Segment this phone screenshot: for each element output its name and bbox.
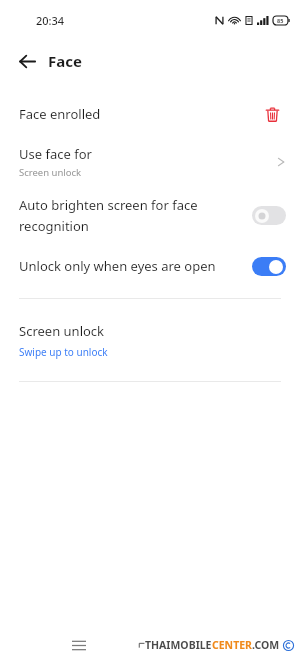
button[interactable]: Screen unlock: [0, 299, 300, 381]
button[interactable]: Menu: [64, 630, 94, 660]
staticText: Auto brighten screen for face: [19, 196, 198, 214]
staticText: Unlock only when eyes are open: [19, 257, 242, 275]
staticText: 85: [277, 17, 284, 24]
staticText: Swipe up to unlock: [19, 345, 108, 359]
button[interactable]: Off: [252, 206, 286, 225]
staticText: 20:34: [36, 13, 65, 28]
button[interactable]: Unlock only when eyes are open: [0, 243, 300, 289]
button[interactable]: Auto brighten screen for face: [0, 187, 300, 243]
staticText: Face: [48, 51, 82, 71]
button[interactable]: Delete face data: [258, 100, 286, 128]
staticText: Screen unlock: [19, 322, 105, 340]
staticText: Face enrolled: [19, 105, 258, 123]
staticText: recognition: [19, 217, 89, 235]
staticText: Use face for: [19, 145, 92, 163]
button[interactable]: Face enrolled: [0, 91, 300, 137]
button[interactable]: Use face for: [0, 137, 300, 187]
staticText: .COM: [252, 638, 280, 652]
staticText: Screen unlock: [19, 166, 82, 179]
button[interactable]: On: [252, 257, 286, 276]
button[interactable]: Back: [10, 44, 44, 78]
staticText: THAIMOBILE: [145, 638, 212, 652]
staticText: CENTER: [212, 638, 252, 652]
